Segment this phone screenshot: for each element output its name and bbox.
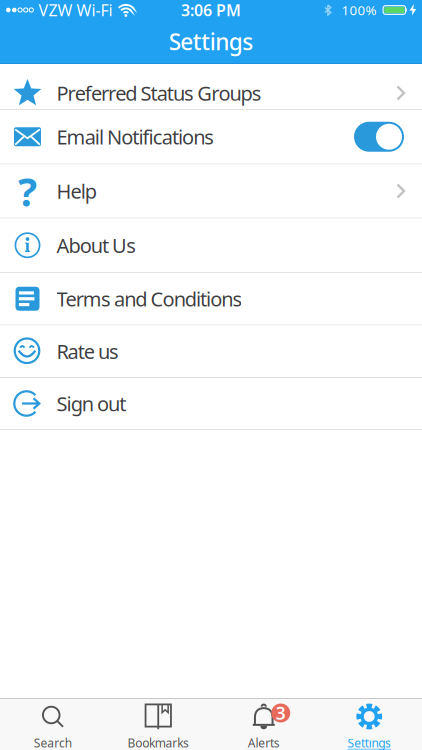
staticText: Settings bbox=[347, 735, 391, 750]
staticText: Sign out bbox=[56, 390, 126, 417]
staticText: Bookmarks bbox=[128, 735, 189, 750]
staticText: Rate us bbox=[56, 338, 119, 365]
button[interactable]: About Us bbox=[0, 218, 422, 272]
button[interactable]: Email Notifications bbox=[0, 110, 422, 163]
button[interactable]: Search bbox=[0, 703, 105, 750]
button[interactable]: Settings bbox=[316, 703, 422, 750]
staticText: 100% bbox=[342, 1, 377, 19]
staticText: Help bbox=[56, 178, 97, 204]
button[interactable]: Bookmarks bbox=[105, 703, 211, 750]
button[interactable]: 3 bbox=[211, 703, 316, 750]
staticText: ? bbox=[18, 164, 37, 217]
staticText: Terms and Conditions bbox=[56, 285, 242, 312]
staticText: About Us bbox=[56, 232, 136, 259]
staticText: Search bbox=[34, 735, 72, 750]
staticText: 3 bbox=[276, 701, 286, 724]
button[interactable]: ? bbox=[0, 164, 422, 217]
staticText: Settings bbox=[169, 26, 253, 56]
button[interactable]: Preferred Status Groups bbox=[0, 64, 422, 109]
staticText: Alerts bbox=[248, 735, 280, 750]
button[interactable]: Terms and Conditions bbox=[0, 273, 422, 324]
button[interactable]: Sign out bbox=[0, 378, 422, 429]
staticText: 3:06 PM bbox=[181, 0, 241, 21]
button[interactable] bbox=[354, 122, 404, 152]
staticText: Email Notifications bbox=[56, 123, 214, 150]
button[interactable]: Rate us bbox=[0, 325, 422, 377]
staticText: Preferred Status Groups bbox=[56, 80, 262, 106]
staticText: VZW Wi-Fi bbox=[38, 0, 112, 21]
